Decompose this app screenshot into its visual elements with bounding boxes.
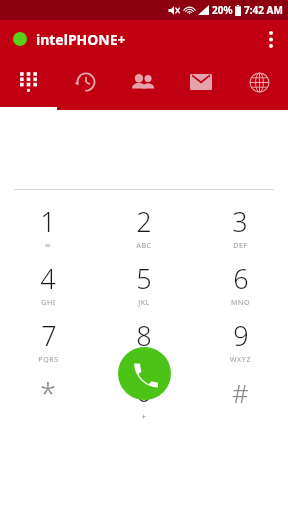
button[interactable]: Messages [172,58,230,110]
button[interactable]: 0 [96,369,192,426]
staticText: 6 [233,260,249,297]
staticText: 3 [232,203,248,240]
staticText: + [141,411,147,422]
staticText: 8 [136,317,152,354]
button[interactable]: 7 [0,312,96,369]
staticText: JKL [138,298,150,308]
staticText: 20% [212,3,233,17]
staticText: 7 [41,317,57,354]
staticText: GHI [41,298,56,308]
staticText: WXYZ [230,355,251,365]
button[interactable]: 4 [0,255,96,312]
staticText: 5 [136,260,152,297]
staticText: PQRS [38,355,59,365]
button[interactable]: 5 [96,255,192,312]
staticText: intelPHONE+ [36,30,126,49]
staticText: * [40,373,56,412]
button[interactable]: Call [118,347,171,400]
button[interactable]: Call history [57,58,114,110]
staticText: ABC [136,241,152,251]
button[interactable]: 6 [192,255,288,312]
button[interactable]: More options [254,20,288,58]
button[interactable]: 8 [96,312,192,369]
button[interactable]: 2 [96,198,192,255]
staticText: DEF [233,241,248,251]
staticText: 4 [40,260,56,297]
button[interactable]: 1 [0,198,96,255]
button[interactable]: # [192,369,288,426]
button[interactable]: 3 [192,198,288,255]
button[interactable]: Dial pad [0,58,57,110]
button[interactable]: Web [230,58,288,110]
button[interactable]: intelPHONE+ [13,20,126,58]
staticText: # [232,375,249,410]
staticText: 0 [136,373,152,410]
button[interactable]: Contacts [114,58,172,110]
staticText: ∞ [44,241,52,250]
button[interactable]: 9 [192,312,288,369]
staticText: 2 [136,203,152,240]
staticText: MNO [231,298,250,308]
staticText: 9 [233,317,249,354]
staticText: 1 [40,203,56,240]
staticText: TUV [136,355,152,365]
button[interactable]: * [0,369,96,426]
staticText: 7:42 AM [244,3,283,17]
